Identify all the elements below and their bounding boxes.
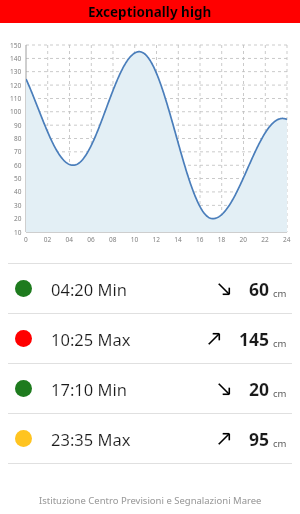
- button[interactable]: 17:10 Min: [0, 364, 300, 413]
- staticText: cm: [273, 337, 287, 350]
- staticText: 95: [249, 427, 270, 451]
- staticText: 145: [239, 327, 270, 351]
- staticText: Exceptionally high: [88, 3, 212, 21]
- staticText: Istituzione Centro Previsioni e Segnalaz…: [39, 494, 262, 507]
- staticText: 60: [249, 277, 270, 301]
- button[interactable]: 10:25 Max: [0, 314, 300, 363]
- other: Rising: [213, 428, 235, 450]
- staticText: 23:35 Max: [51, 428, 131, 450]
- other: Rising: [203, 328, 225, 350]
- staticText: 17:10 Min: [51, 378, 127, 400]
- staticText: cm: [273, 387, 287, 400]
- other: Falling: [213, 278, 235, 300]
- button[interactable]: 04:20 Min: [0, 264, 300, 313]
- staticText: cm: [273, 287, 287, 300]
- button[interactable]: Exceptionally high: [0, 0, 300, 23]
- staticText: 10:25 Max: [51, 328, 131, 350]
- button[interactable]: 23:35 Max: [0, 414, 300, 463]
- other: Falling: [213, 378, 235, 400]
- staticText: 04:20 Min: [51, 278, 127, 300]
- staticText: cm: [273, 437, 287, 450]
- staticText: 20: [249, 377, 270, 401]
